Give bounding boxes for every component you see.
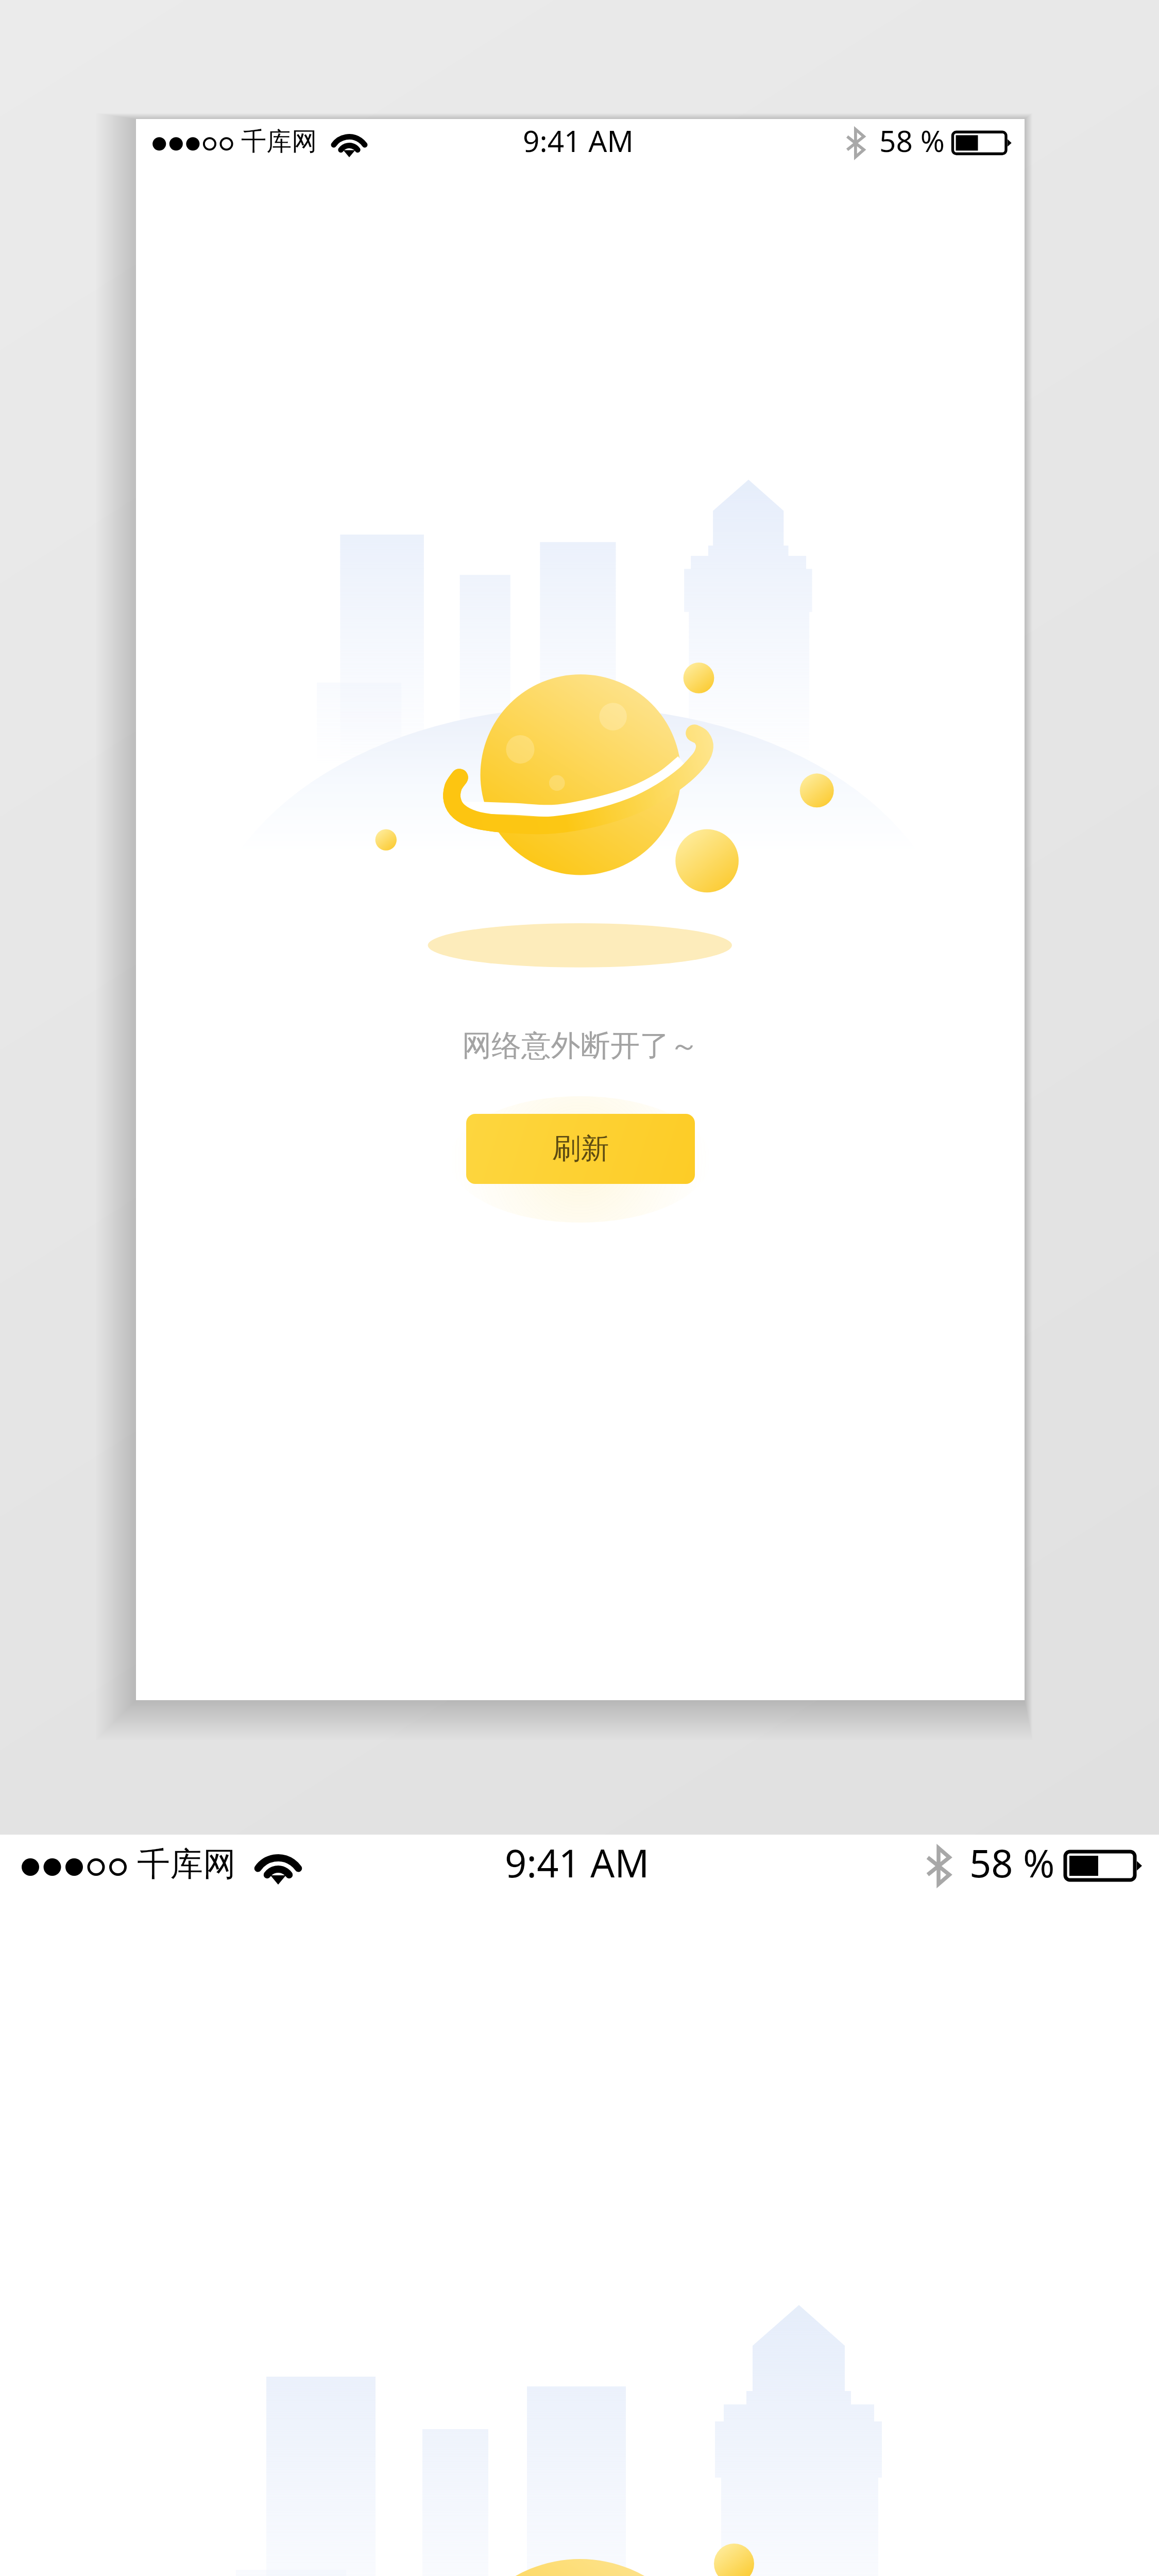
staticText: 千库网 [137, 1843, 236, 1885]
button[interactable]: 刷新 [466, 1114, 695, 1184]
staticText: 千库网 [241, 126, 317, 158]
staticText: 9:41 AM [523, 121, 634, 160]
staticText: 9:41 AM [505, 1837, 650, 1889]
staticText: 网络意外断开了～ [462, 1027, 699, 1064]
staticText: 58 % [969, 1837, 1055, 1889]
staticText: 刷新 [552, 1131, 609, 1167]
staticText: 58 % [879, 121, 945, 160]
